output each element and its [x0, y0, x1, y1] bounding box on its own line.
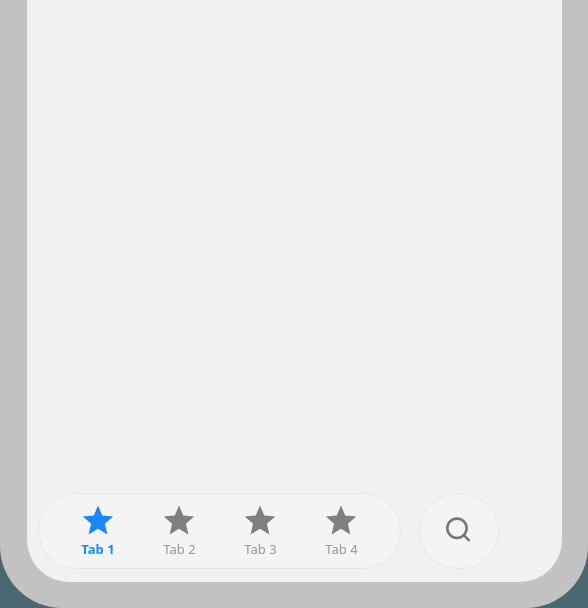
button[interactable]: Tab 3: [239, 505, 281, 558]
staticText: Tab 4: [325, 540, 358, 558]
staticText: Tab 3: [244, 540, 277, 558]
staticText: Tab 1: [81, 540, 115, 558]
button[interactable]: Tab 4: [320, 505, 362, 558]
button[interactable]: Tab 2: [158, 505, 200, 558]
staticText: Tab 2: [163, 540, 196, 558]
button[interactable]: Tab 1: [77, 505, 119, 558]
button[interactable]: Search: [419, 493, 499, 569]
